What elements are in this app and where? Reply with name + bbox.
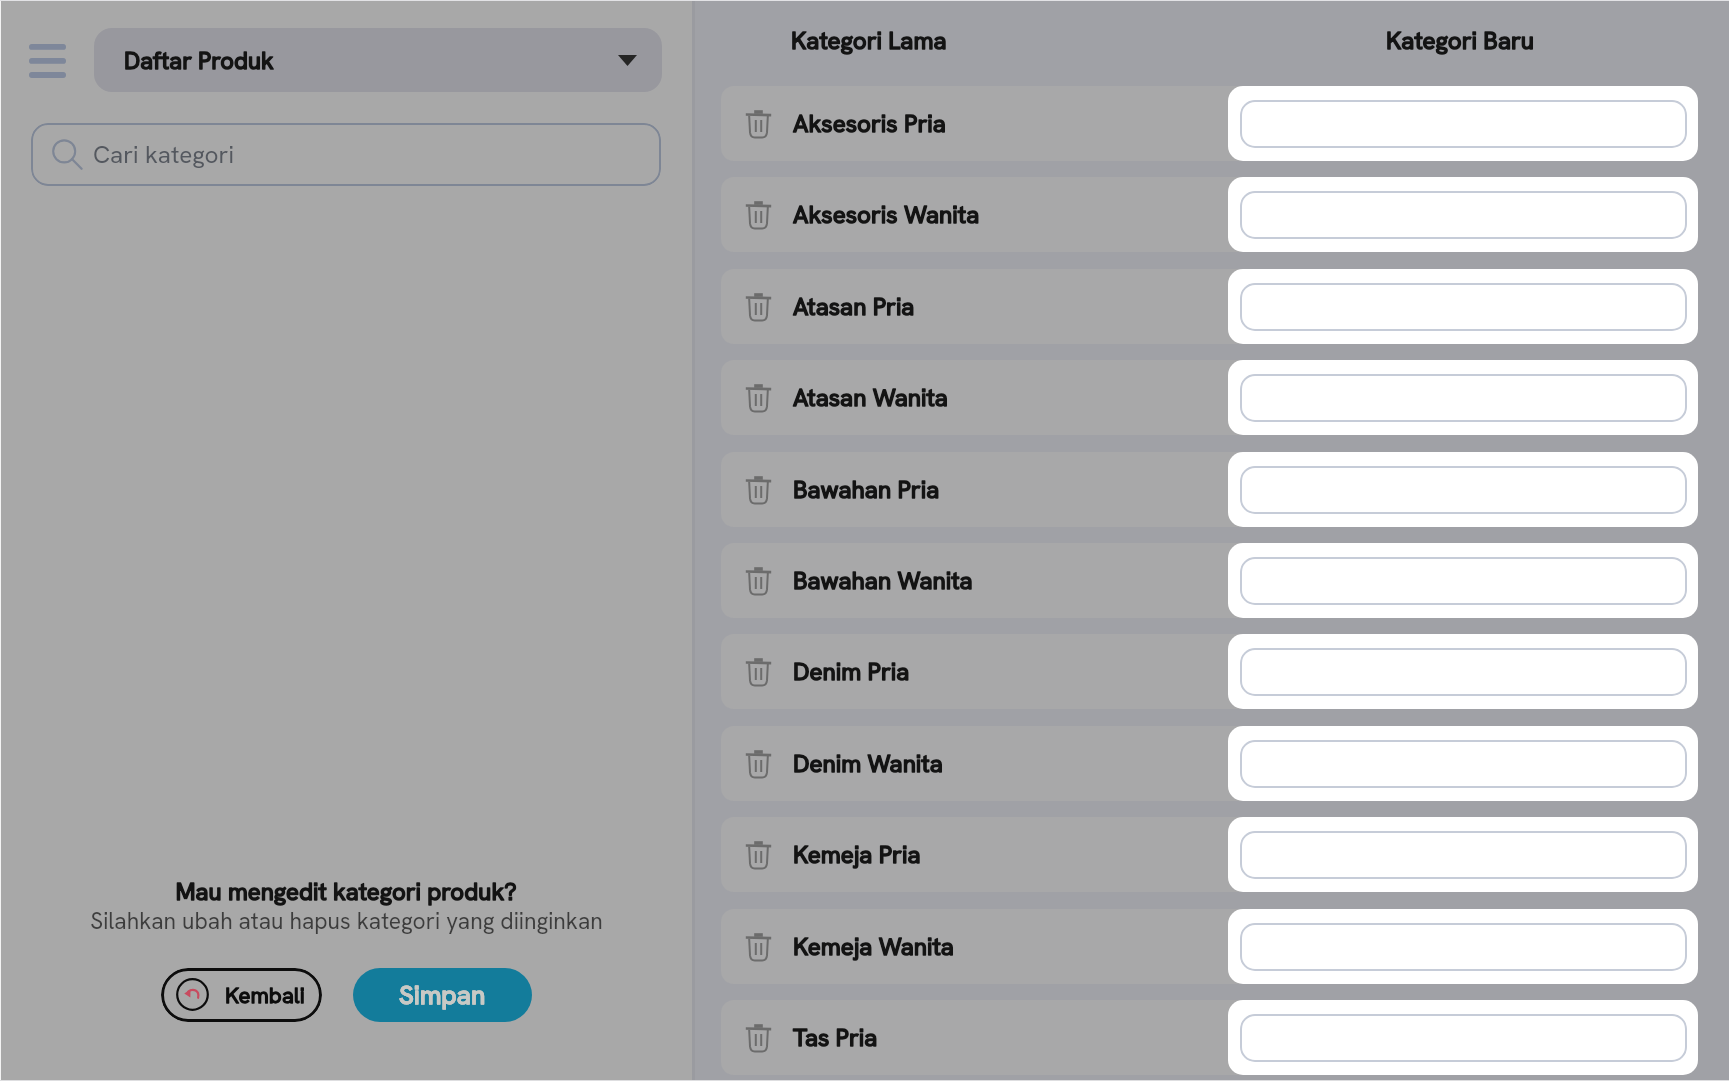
staticText: Kategori Lama bbox=[791, 25, 947, 57]
button[interactable] bbox=[1240, 100, 1687, 148]
staticText: Bawahan Pria bbox=[793, 474, 940, 506]
button[interactable] bbox=[1240, 831, 1687, 879]
button[interactable] bbox=[1240, 374, 1687, 422]
button[interactable]: Hapus Denim Wanita bbox=[721, 726, 1571, 801]
button[interactable]: Simpan bbox=[353, 968, 532, 1022]
staticText: Kemeja Wanita bbox=[793, 931, 954, 963]
button[interactable] bbox=[1240, 191, 1687, 239]
button[interactable] bbox=[1240, 1014, 1687, 1062]
staticText: Aksesoris Wanita bbox=[793, 199, 980, 231]
staticText: Denim Pria bbox=[793, 656, 910, 688]
staticText: Atasan Wanita bbox=[793, 382, 948, 414]
staticText: Kategori Baru bbox=[1386, 25, 1535, 57]
button[interactable]: Hapus Bawahan Wanita bbox=[721, 543, 1571, 618]
button[interactable]: Hapus Atasan Wanita bbox=[721, 360, 1571, 435]
button[interactable]: Cari kategori bbox=[31, 123, 661, 186]
button[interactable]: Hapus Atasan Pria bbox=[721, 269, 1571, 344]
button[interactable]: Kembali bbox=[161, 968, 322, 1022]
staticText: Tas Pria bbox=[793, 1022, 878, 1054]
button[interactable]: Hapus Bawahan Wanita bbox=[740, 563, 776, 599]
staticText: Aksesoris Wanita bbox=[793, 199, 980, 231]
button[interactable]: Hapus Denim Wanita bbox=[740, 746, 776, 782]
staticText: Aksesoris Pria bbox=[793, 108, 946, 140]
button[interactable]: Menu bbox=[19, 34, 76, 88]
button[interactable]: Hapus Kemeja Wanita bbox=[721, 909, 1571, 984]
button[interactable] bbox=[1240, 557, 1687, 605]
staticText: Denim Pria bbox=[793, 656, 910, 688]
staticText: Kategori Baru bbox=[1386, 25, 1535, 57]
staticText: Tas Pria bbox=[793, 1022, 878, 1054]
staticText: Kembali bbox=[225, 981, 305, 1010]
button[interactable]: Hapus Aksesoris Pria bbox=[740, 106, 776, 142]
button[interactable]: Hapus Aksesoris Pria bbox=[721, 86, 1571, 161]
staticText: Daftar Produk bbox=[124, 45, 274, 76]
staticText: Atasan Pria bbox=[793, 291, 915, 323]
staticText: Aksesoris Pria bbox=[793, 108, 946, 140]
button[interactable]: Hapus Aksesoris Wanita bbox=[740, 197, 776, 233]
button[interactable]: Hapus Atasan Pria bbox=[740, 289, 776, 325]
staticText: Simpan bbox=[399, 978, 486, 1012]
button[interactable]: Hapus Denim Pria bbox=[740, 654, 776, 690]
button[interactable] bbox=[1240, 283, 1687, 331]
staticText: Kembali bbox=[225, 981, 305, 1010]
staticText: Bawahan Wanita bbox=[793, 565, 973, 597]
staticText: Atasan Pria bbox=[793, 291, 915, 323]
staticText: Kemeja Pria bbox=[793, 839, 921, 871]
button[interactable]: Hapus Tas Pria bbox=[740, 1020, 776, 1056]
button[interactable]: Hapus Bawahan Pria bbox=[740, 472, 776, 508]
staticText: Silahkan ubah atau hapus kategori yang d… bbox=[90, 906, 603, 936]
staticText: Kemeja Wanita bbox=[793, 931, 954, 963]
staticText: Kemeja Pria bbox=[793, 839, 921, 871]
button[interactable]: Hapus Kemeja Wanita bbox=[740, 929, 776, 965]
staticText: Mau mengedit kategori produk? bbox=[175, 876, 517, 907]
staticText: Mau mengedit kategori produk? bbox=[175, 876, 517, 907]
staticText: Bawahan Pria bbox=[793, 474, 940, 506]
button[interactable]: Hapus Kemeja Pria bbox=[740, 837, 776, 873]
button[interactable] bbox=[1240, 740, 1687, 788]
staticText: Atasan Wanita bbox=[793, 382, 948, 414]
button[interactable]: Hapus Bawahan Pria bbox=[721, 452, 1571, 527]
button[interactable]: Hapus Denim Pria bbox=[721, 634, 1571, 709]
staticText: Denim Wanita bbox=[793, 748, 943, 780]
staticText: Daftar Produk bbox=[124, 45, 274, 76]
staticText: Bawahan Wanita bbox=[793, 565, 973, 597]
staticText: Simpan bbox=[399, 978, 486, 1012]
button[interactable]: Hapus Atasan Wanita bbox=[740, 380, 776, 416]
button[interactable]: Daftar Produk bbox=[94, 28, 662, 92]
button[interactable]: Hapus Kemeja Pria bbox=[721, 817, 1571, 892]
staticText: Denim Wanita bbox=[793, 748, 943, 780]
button[interactable]: Hapus Tas Pria bbox=[721, 1000, 1571, 1075]
staticText: Cari kategori bbox=[93, 139, 234, 171]
button[interactable] bbox=[1240, 466, 1687, 514]
button[interactable]: Hapus Aksesoris Wanita bbox=[721, 177, 1571, 252]
button[interactable] bbox=[1240, 648, 1687, 696]
staticText: Kategori Lama bbox=[791, 25, 947, 57]
button[interactable] bbox=[1240, 923, 1687, 971]
